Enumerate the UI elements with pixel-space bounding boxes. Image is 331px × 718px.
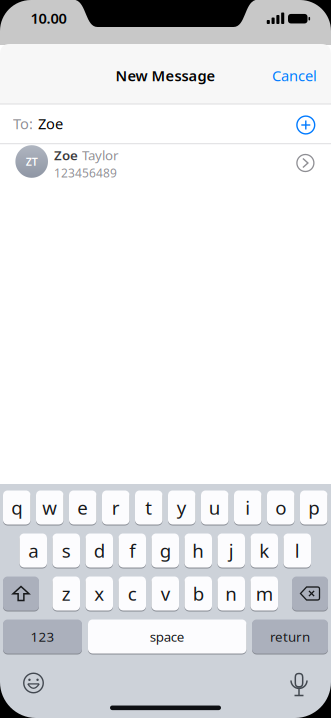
button[interactable]: h [184,533,212,568]
button[interactable]: w [36,490,63,525]
button[interactable]: m [250,576,278,611]
staticText: a [28,538,38,563]
button[interactable]: i [234,490,261,525]
button[interactable]: r [102,490,129,525]
button[interactable]: t [135,490,162,525]
staticText: m [256,581,273,606]
button[interactable]: o [267,490,294,525]
staticText: v [161,581,170,606]
staticText: h [192,538,204,563]
button[interactable]: n [217,576,245,611]
button[interactable]: x [85,576,113,611]
button[interactable] [297,116,315,134]
staticText: k [259,538,269,563]
staticText: e [77,495,88,520]
staticText: s [62,538,71,563]
staticText: g [160,538,171,563]
staticText: j [229,538,234,563]
staticText: d [94,538,105,563]
staticText: Cancel [272,66,317,85]
staticText: New Message [115,66,215,85]
staticText: i [245,495,250,520]
button[interactable]: y [168,490,195,525]
staticText: z [62,581,71,606]
staticText: q [11,495,22,520]
button[interactable]: s [52,533,80,568]
staticText: space [150,628,185,645]
button[interactable] [3,576,39,611]
button[interactable]: space [88,619,246,654]
button[interactable]: z [52,576,80,611]
button[interactable]: 123 [3,619,82,654]
staticText: 10.00 [30,8,66,28]
staticText: b [193,581,204,606]
staticText: l [295,538,300,563]
staticText: n [225,581,237,606]
staticText: f [129,538,135,563]
staticText: y [177,495,187,520]
button[interactable]: ZT [0,143,331,184]
button[interactable]: v [151,576,179,611]
button[interactable] [297,154,314,171]
button[interactable]: return [252,619,328,654]
staticText: r [112,495,120,520]
staticText: Zoe [38,114,63,133]
staticText: Zoe [54,146,78,164]
button[interactable]: c [118,576,146,611]
staticText: c [128,581,137,606]
button[interactable] [291,673,307,696]
button[interactable]: j [217,533,245,568]
staticText: To: [13,114,33,133]
staticText: return [270,628,310,645]
staticText: 123456489 [54,165,117,181]
button[interactable]: a [19,533,47,568]
button[interactable]: Cancel [272,66,317,85]
button[interactable]: l [283,533,311,568]
staticText: ZT [26,154,38,169]
button[interactable]: d [85,533,113,568]
button[interactable]: b [184,576,212,611]
button[interactable]: p [300,490,327,525]
staticText: Taylor [82,146,119,164]
button[interactable]: q [3,490,30,525]
staticText: p [308,495,319,520]
staticText: o [275,495,286,520]
button[interactable]: u [201,490,228,525]
button[interactable]: e [69,490,96,525]
button[interactable]: g [151,533,179,568]
staticText: w [42,495,57,520]
button[interactable]: f [118,533,146,568]
staticText: t [145,495,152,520]
staticText: x [94,581,104,606]
staticText: 123 [30,628,54,645]
button[interactable] [23,673,43,693]
staticText: u [209,495,221,520]
button[interactable]: k [250,533,278,568]
button[interactable] [292,576,328,611]
